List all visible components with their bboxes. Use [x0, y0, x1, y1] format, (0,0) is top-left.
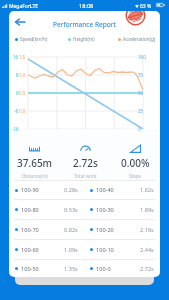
staticText: 0.00%	[121, 156, 150, 170]
staticText: 75	[138, 72, 144, 78]
staticText: 0	[16, 90, 19, 96]
button[interactable]: 100-50	[9, 260, 160, 277]
staticText: 2.16s	[140, 226, 154, 234]
staticText: 37.65m	[17, 156, 53, 170]
staticText: 100-10	[96, 246, 114, 254]
staticText: 25	[138, 108, 144, 114]
staticText: 2.72s	[140, 265, 154, 273]
staticText: 1.09s	[64, 246, 78, 254]
staticText: 1.35s	[64, 265, 78, 273]
staticText: 100	[138, 54, 146, 60]
staticText: -8	[14, 108, 19, 114]
staticText: Acceleration(g)	[123, 36, 156, 42]
staticText: 100-50	[21, 265, 39, 273]
staticText: Distance(m)	[22, 173, 48, 179]
button[interactable]: 0.00%	[110, 129, 160, 180]
staticText: 0.5	[19, 90, 26, 96]
button[interactable]: 2.72s	[60, 129, 110, 180]
button[interactable]: Speed(km/h)	[15, 36, 48, 42]
staticText: 50	[138, 90, 144, 96]
staticText: 100-20	[96, 226, 114, 234]
staticText: 100-70	[21, 226, 39, 234]
staticText: -16	[12, 126, 19, 132]
staticText: 8	[16, 72, 19, 78]
staticText: Speed(km/h)	[20, 36, 48, 42]
staticText: Performance Report	[53, 20, 116, 29]
button[interactable]: 100-90	[9, 181, 160, 199]
staticText: 2.44s	[140, 246, 154, 254]
staticText: 16	[13, 54, 19, 60]
button[interactable]: Back	[11, 13, 29, 31]
staticText: 1.62s	[140, 186, 154, 194]
staticText: 63 %	[140, 3, 152, 10]
button[interactable]: Acceleration(g)	[118, 36, 156, 42]
staticText: 18:08	[79, 2, 94, 10]
button[interactable]: 100-80	[9, 200, 160, 219]
staticText: 100-40	[96, 186, 114, 194]
staticText: Total work	[74, 173, 97, 179]
staticText: 0.28s	[64, 186, 78, 194]
button[interactable]: Height(m)	[68, 36, 95, 42]
staticText: 0.82s	[64, 226, 78, 234]
staticText: 1.89s	[140, 206, 154, 214]
staticText: 0	[138, 126, 141, 132]
staticText: 100-60	[21, 246, 39, 254]
staticText: 1.0	[19, 72, 26, 78]
staticText: 100-80	[21, 206, 39, 214]
staticText: 2.72s	[73, 156, 98, 170]
button[interactable]: 100-70	[9, 220, 160, 239]
staticText: MegaFon	[9, 3, 31, 10]
staticText: 1.5	[19, 54, 26, 60]
staticText: 100-0	[96, 265, 111, 273]
button[interactable]: 37.65m	[9, 129, 60, 180]
staticText: 100-30	[96, 206, 114, 214]
staticText: Height(m)	[73, 36, 95, 42]
staticText: Slope	[129, 173, 141, 179]
button[interactable]: 100-60	[9, 240, 160, 259]
staticText: LTE	[30, 3, 39, 10]
staticText: 0.0	[19, 108, 26, 114]
staticText: 0.53s	[64, 206, 78, 214]
staticText: 100-90	[21, 186, 39, 194]
